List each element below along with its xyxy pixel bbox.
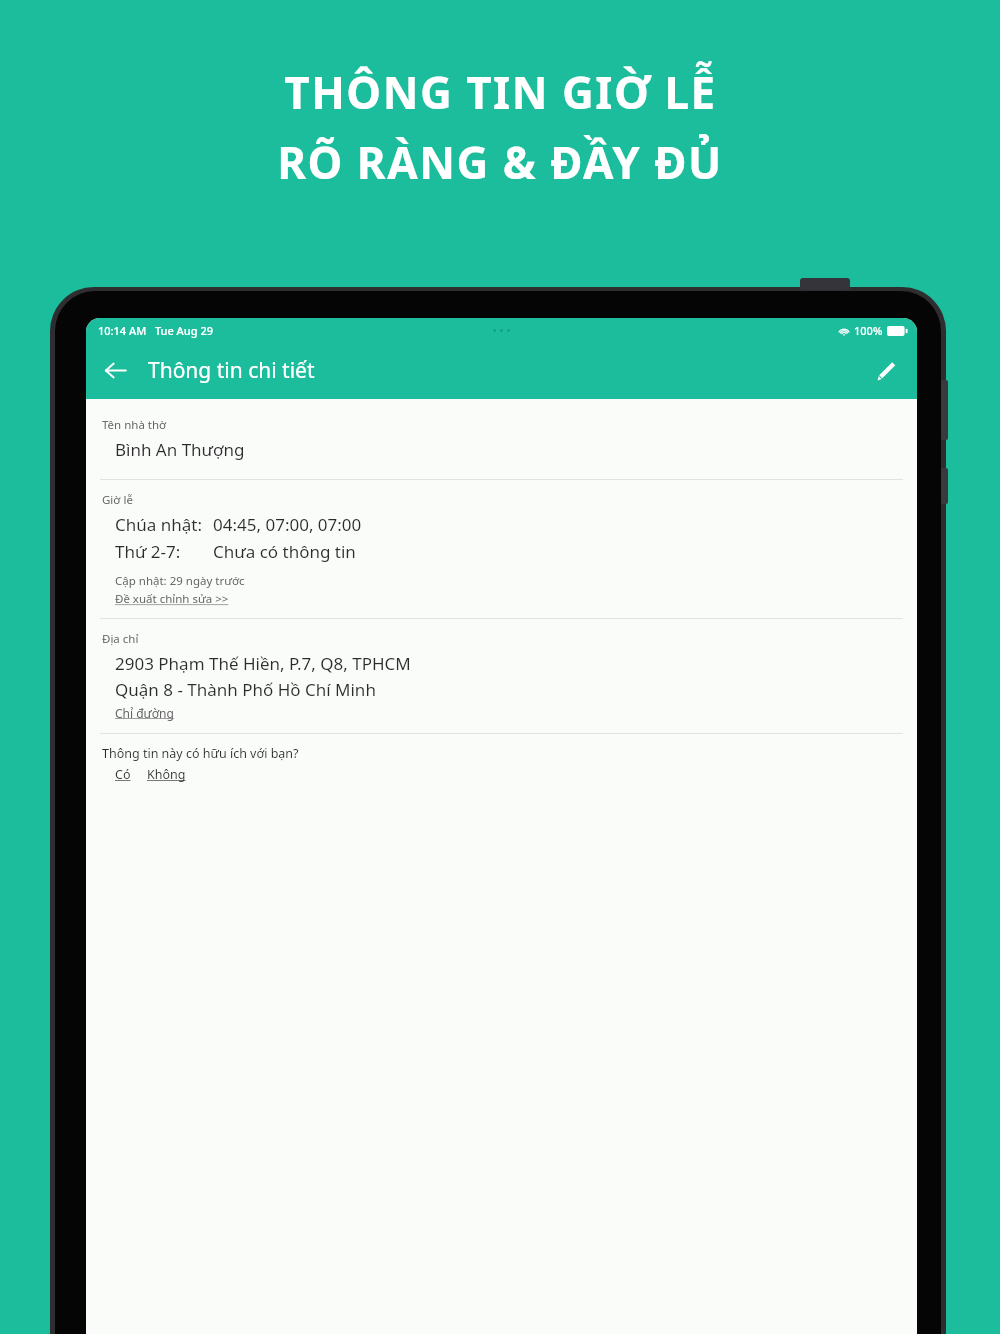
button[interactable]: Back bbox=[98, 353, 133, 388]
staticText: Chúa nhật: bbox=[115, 513, 202, 536]
button[interactable]: Chỉ đường bbox=[115, 705, 174, 721]
staticText: 10:14 AM Tue Aug 29 bbox=[98, 323, 213, 338]
staticText: Thông tin chi tiết bbox=[148, 356, 315, 385]
staticText: Bình An Thượng bbox=[115, 438, 245, 461]
staticText: Chưa có thông tin bbox=[213, 540, 356, 563]
button[interactable]: Đề xuất chỉnh sửa >> bbox=[115, 591, 229, 607]
button[interactable]: Không bbox=[147, 766, 186, 783]
staticText: Thông tin này có hữu ích với bạn? bbox=[102, 745, 299, 762]
staticText: RÕ RÀNG & ĐẦY ĐỦ bbox=[277, 132, 723, 192]
staticText: Không bbox=[147, 766, 186, 783]
button[interactable]: Edit bbox=[867, 352, 905, 390]
staticText: Quận 8 - Thành Phố Hồ Chí Minh bbox=[115, 678, 376, 701]
staticText: Thứ 2-7: bbox=[115, 540, 181, 563]
staticText: Tên nhà thờ bbox=[102, 417, 167, 433]
staticText: 100% bbox=[854, 323, 883, 338]
staticText: Đề xuất chỉnh sửa >> bbox=[115, 591, 229, 607]
staticText: 2903 Phạm Thế Hiền, P.7, Q8, TPHCM bbox=[115, 652, 411, 675]
staticText: THÔNG TIN GIỜ LỄ bbox=[284, 62, 717, 122]
staticText: Có bbox=[115, 766, 131, 783]
staticText: Giờ lễ bbox=[102, 492, 133, 508]
staticText: Địa chỉ bbox=[102, 631, 139, 647]
staticText: Cập nhật: 29 ngày trước bbox=[115, 573, 245, 589]
staticText: 04:45, 07:00, 07:00 bbox=[213, 513, 362, 536]
button[interactable]: Có bbox=[115, 766, 131, 783]
staticText: Chỉ đường bbox=[115, 705, 174, 721]
